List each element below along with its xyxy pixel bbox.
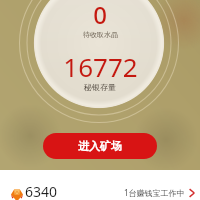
staticText: 16772 xyxy=(63,49,138,84)
staticText: 6340 xyxy=(25,182,58,200)
staticText: 1台赚钱宝工作中 xyxy=(124,187,185,198)
staticText: 待收取水晶 xyxy=(83,30,118,39)
staticText: 0 xyxy=(93,0,107,31)
button[interactable]: 进入矿场 xyxy=(43,133,157,159)
button[interactable]: 1台赚钱宝工作中 xyxy=(124,187,191,198)
other: Crystals xyxy=(11,189,23,200)
button[interactable]: Crystals xyxy=(9,182,54,200)
staticText: 秘银存量 xyxy=(84,82,116,92)
other: More xyxy=(189,188,195,198)
staticText: 进入矿场 xyxy=(78,139,122,153)
